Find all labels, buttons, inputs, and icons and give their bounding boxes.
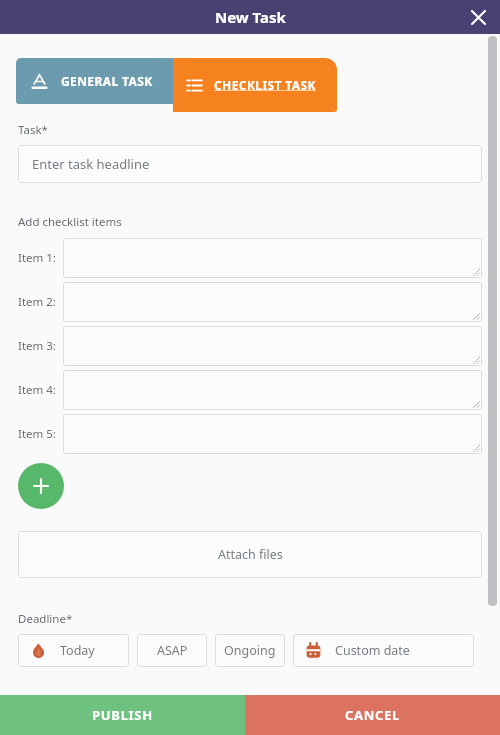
staticText: Enter task headline — [32, 155, 150, 173]
staticText: CANCEL — [345, 706, 401, 724]
button[interactable]: Today — [18, 634, 129, 667]
button[interactable]: Add item — [18, 463, 64, 509]
staticText: Attach files — [218, 546, 283, 563]
staticText: Custom date — [335, 642, 410, 659]
staticText: Add checklist items — [18, 214, 122, 230]
button[interactable]: CANCEL — [245, 695, 500, 735]
staticText: Item 3: — [18, 338, 56, 354]
staticText: Deadline* — [18, 611, 73, 627]
button[interactable]: Enter task headline — [18, 145, 482, 183]
button[interactable]: Attach files — [18, 531, 482, 578]
staticText: New Task — [215, 7, 286, 27]
staticText: Item 1: — [18, 250, 56, 266]
staticText: Item 4: — [18, 382, 56, 398]
staticText: Task* — [18, 122, 48, 138]
button[interactable]: Close — [462, 1, 494, 33]
staticText: Item 2: — [18, 294, 56, 310]
button[interactable]: PUBLISH — [0, 695, 245, 735]
button[interactable]: Checklist item 1 — [63, 238, 482, 278]
staticText: Today — [60, 642, 95, 659]
button[interactable]: Checklist item 2 — [63, 282, 482, 322]
button[interactable]: Ongoing — [215, 634, 285, 667]
staticText: Item 5: — [18, 426, 56, 442]
button[interactable]: Checklist item 5 — [63, 414, 482, 454]
button[interactable]: Checklist item 3 — [63, 326, 482, 366]
button[interactable]: Checklist item 4 — [63, 370, 482, 410]
staticText: PUBLISH — [92, 706, 153, 724]
staticText: CHECKLIST TASK — [214, 77, 316, 93]
button[interactable]: CHECKLIST TASK — [173, 58, 337, 112]
staticText: ASAP — [157, 642, 188, 659]
staticText: Ongoing — [224, 642, 276, 659]
button[interactable]: GENERAL TASK — [16, 58, 173, 104]
button[interactable]: Custom date — [293, 634, 474, 667]
staticText: GENERAL TASK — [61, 73, 153, 89]
button[interactable]: ASAP — [137, 634, 207, 667]
